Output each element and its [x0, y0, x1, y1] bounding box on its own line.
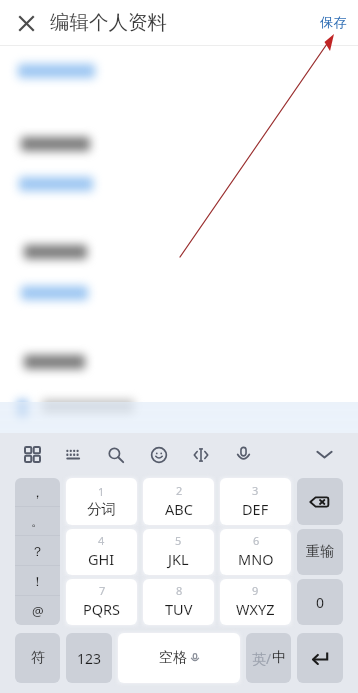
button[interactable]: Enter [297, 633, 343, 683]
staticText: 3 [252, 483, 259, 498]
button[interactable]: 空格 [118, 633, 240, 683]
staticText: 7 [99, 583, 106, 598]
button[interactable]: 符 [15, 633, 60, 683]
staticText: 。 [31, 513, 44, 529]
button[interactable]: 2 [143, 478, 214, 525]
button[interactable]: 4 [66, 529, 137, 575]
button[interactable]: ， [15, 478, 60, 506]
staticText: 6 [253, 533, 260, 548]
staticText: 5 [175, 533, 182, 548]
button[interactable]: 7 [66, 579, 137, 625]
button[interactable]: 8 [143, 579, 214, 625]
button[interactable]: 5 [143, 529, 214, 575]
staticText: 8 [176, 583, 183, 598]
button[interactable]: 123 [66, 633, 112, 683]
button[interactable]: Keyboard [56, 433, 90, 476]
staticText: 2 [176, 483, 183, 498]
button[interactable]: 6 [220, 529, 291, 575]
staticText: 符 [31, 649, 45, 667]
staticText: 4 [98, 533, 105, 548]
staticText: WXYZ [236, 599, 275, 619]
button[interactable]: Hide keyboard [307, 433, 341, 476]
staticText: ？ [31, 543, 44, 559]
staticText: GHI [88, 549, 115, 569]
button[interactable]: ！ [15, 566, 60, 595]
staticText: 0 [316, 593, 325, 612]
staticText: ABC [165, 499, 193, 519]
button[interactable]: Close [7, 4, 45, 42]
button[interactable]: 3 [220, 478, 291, 525]
staticText: PQRS [83, 599, 121, 619]
staticText: ， [31, 484, 44, 500]
button[interactable]: Keyboard layouts [15, 433, 49, 476]
button[interactable]: 英/ [246, 633, 291, 683]
staticText: 中 [272, 649, 286, 667]
staticText: TUV [165, 599, 193, 619]
button[interactable]: 保存 [320, 14, 347, 31]
button[interactable]: 9 [220, 579, 291, 625]
staticText: 英/ [252, 649, 272, 668]
staticText: @ [32, 602, 44, 620]
button[interactable]: 1 [66, 478, 137, 525]
button[interactable]: 。 [15, 507, 60, 535]
staticText: 保存 [320, 14, 347, 31]
staticText: ！ [31, 573, 44, 589]
button[interactable]: Emoji [142, 433, 176, 476]
staticText: 1 [98, 484, 105, 499]
button[interactable]: @ [15, 596, 60, 625]
button[interactable]: Edit text [184, 433, 218, 476]
staticText: 9 [252, 583, 259, 598]
button[interactable]: Voice input [226, 433, 260, 476]
button[interactable]: Backspace [297, 478, 343, 525]
button[interactable]: Search [99, 433, 133, 476]
staticText: 编辑个人资料 [50, 10, 167, 35]
staticText: DEF [242, 499, 269, 519]
staticText: 空格 [159, 649, 187, 667]
button[interactable]: 0 [297, 579, 343, 625]
staticText: 123 [77, 649, 102, 668]
staticText: 分词 [87, 500, 116, 518]
staticText: MNO [238, 549, 274, 569]
button[interactable]: ？ [15, 536, 60, 565]
staticText: 重输 [306, 543, 334, 561]
staticText: JKL [168, 549, 189, 569]
button[interactable]: 重输 [297, 529, 343, 575]
